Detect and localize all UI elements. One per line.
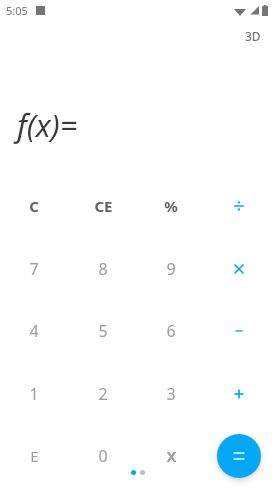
button[interactable]: 2 [72,366,134,422]
button[interactable]: 6 [140,303,202,359]
staticText: 9 [166,258,176,280]
button[interactable]: CE [72,178,134,234]
staticText: 3 [166,383,176,405]
button[interactable]: Plus [208,366,270,422]
button[interactable]: 9 [140,241,202,297]
button[interactable]: 5 [72,303,134,359]
staticText: CE [94,196,113,216]
button[interactable]: Minus [208,303,270,359]
button[interactable]: 3D [242,26,264,46]
button[interactable]: 4 [3,303,65,359]
button[interactable]: X [140,428,202,484]
button[interactable]: Divide [208,178,270,234]
staticText: 7 [29,258,39,280]
button[interactable]: 7 [3,241,65,297]
button[interactable]: 1 [3,366,65,422]
staticText: 4 [29,320,39,342]
staticText: 6 [166,320,176,342]
staticText: C [29,196,39,216]
button[interactable]: 0 [72,428,134,484]
button[interactable]: Multiply [208,241,270,297]
button[interactable]: C [3,178,65,234]
staticText: X [166,446,177,466]
button[interactable]: % [140,178,202,234]
staticText: f(x)= [17,104,78,146]
staticText: 3D [245,28,261,44]
staticText: % [164,196,178,216]
staticText: 8 [98,258,108,280]
staticText: E [30,446,39,466]
button[interactable]: 8 [72,241,134,297]
staticText: 1 [29,383,39,405]
button[interactable]: Equals [217,434,261,478]
staticText: 5 [98,320,108,342]
button[interactable]: E [3,428,65,484]
staticText: 5:05 [6,3,28,18]
button[interactable]: 3 [140,366,202,422]
staticText: 0 [98,445,108,467]
staticText: 2 [98,383,108,405]
